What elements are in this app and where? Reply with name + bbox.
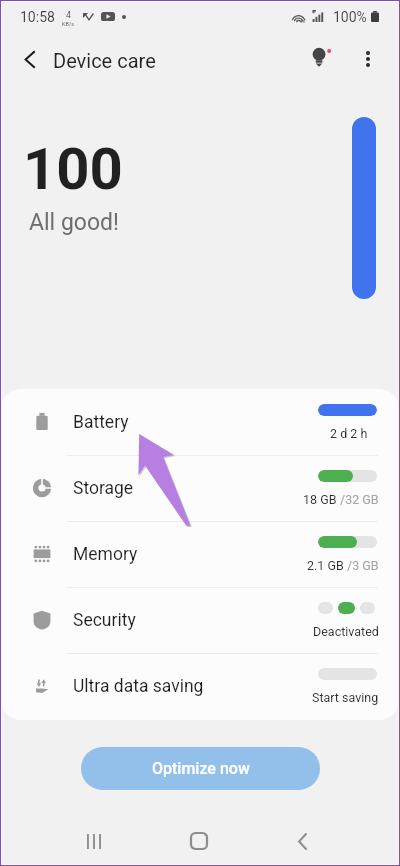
staticText: 2 d 2 h	[330, 426, 368, 441]
button[interactable]: Memory	[1, 521, 399, 587]
button[interactable]: Navigate up	[7, 37, 51, 81]
staticText: Deactivated	[313, 624, 379, 639]
staticText: 18 GB	[303, 492, 340, 507]
staticText: Memory	[73, 544, 138, 565]
button[interactable]: Recent apps	[60, 817, 128, 863]
button[interactable]: Home	[164, 817, 232, 863]
button[interactable]: Security	[1, 587, 399, 653]
staticText: Ultra data saving	[73, 676, 204, 697]
button[interactable]: Storage	[1, 455, 399, 521]
staticText: 100	[23, 135, 123, 203]
button[interactable]: Ultra data saving	[1, 653, 399, 719]
staticText: Battery	[73, 412, 129, 433]
staticText: KB/s	[62, 21, 74, 27]
staticText: Storage	[73, 478, 134, 499]
staticText: 10:58	[20, 9, 55, 25]
staticText: 2.1 GB	[307, 558, 347, 573]
staticText: Optimize now	[152, 759, 250, 778]
staticText: /3 GB	[347, 558, 379, 573]
button[interactable]: Optimize now	[81, 747, 320, 790]
staticText: /32 GB	[340, 492, 379, 507]
staticText: 4	[66, 10, 71, 20]
staticText: All good!	[29, 209, 119, 236]
staticText: Device care	[53, 49, 156, 72]
button[interactable]: Back	[268, 817, 336, 863]
button[interactable]: Tips	[298, 37, 342, 81]
button[interactable]: Battery	[1, 389, 399, 455]
staticText: 100%	[333, 9, 367, 25]
staticText: Security	[73, 610, 136, 631]
staticText: Start saving	[312, 690, 379, 705]
button[interactable]: More options	[346, 37, 390, 81]
